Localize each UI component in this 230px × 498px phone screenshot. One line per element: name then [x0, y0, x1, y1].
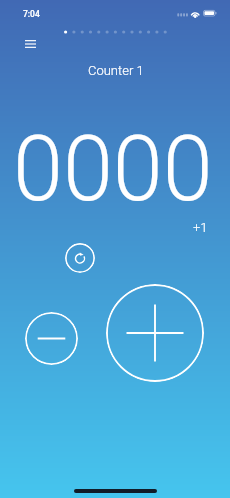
button[interactable]: Decrement [25, 312, 78, 365]
staticText: 0000 [13, 117, 213, 222]
staticText: 7:04 [23, 9, 40, 19]
button[interactable]: Reset [65, 243, 95, 273]
staticText: +1 [193, 220, 208, 235]
button[interactable]: Menu [21, 35, 39, 53]
staticText: Counter 1 [88, 63, 144, 78]
button[interactable]: Increment [106, 284, 204, 382]
